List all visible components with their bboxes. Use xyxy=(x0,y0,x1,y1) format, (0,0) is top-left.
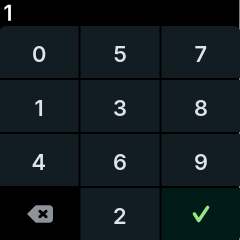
button[interactable]: 8 xyxy=(161,80,240,132)
button[interactable]: 1 xyxy=(0,80,78,132)
button[interactable]: 4 xyxy=(0,134,78,186)
staticText: 2 xyxy=(113,203,127,229)
staticText: 3 xyxy=(113,95,127,121)
staticText: 1 xyxy=(3,0,12,26)
button[interactable]: 0 xyxy=(0,26,78,78)
button[interactable]: 5 xyxy=(80,26,159,78)
button[interactable]: 7 xyxy=(161,26,240,78)
staticText: 5 xyxy=(113,41,126,67)
staticText: 1 xyxy=(34,95,43,121)
button[interactable]: 6 xyxy=(80,134,159,186)
button[interactable]: Delete xyxy=(0,188,78,240)
staticText: 4 xyxy=(31,149,46,175)
staticText: 0 xyxy=(32,41,46,67)
button[interactable]: Confirm passcode xyxy=(161,188,240,240)
staticText: 8 xyxy=(194,95,208,121)
staticText: 7 xyxy=(194,41,207,67)
staticText: 6 xyxy=(113,149,127,175)
button[interactable]: 2 xyxy=(80,188,159,240)
staticText: 9 xyxy=(194,149,208,175)
button[interactable]: 9 xyxy=(161,134,240,186)
button[interactable]: 3 xyxy=(80,80,159,132)
